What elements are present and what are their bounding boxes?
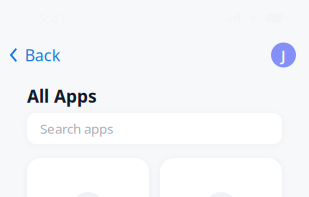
staticText: J [281, 45, 286, 65]
button[interactable]: Account [271, 42, 296, 67]
staticText: Back [25, 44, 61, 66]
button[interactable]: Search apps [27, 113, 282, 144]
button[interactable]: Back [9, 40, 62, 70]
staticText: All Apps [27, 84, 97, 107]
staticText: Search apps [40, 120, 113, 137]
